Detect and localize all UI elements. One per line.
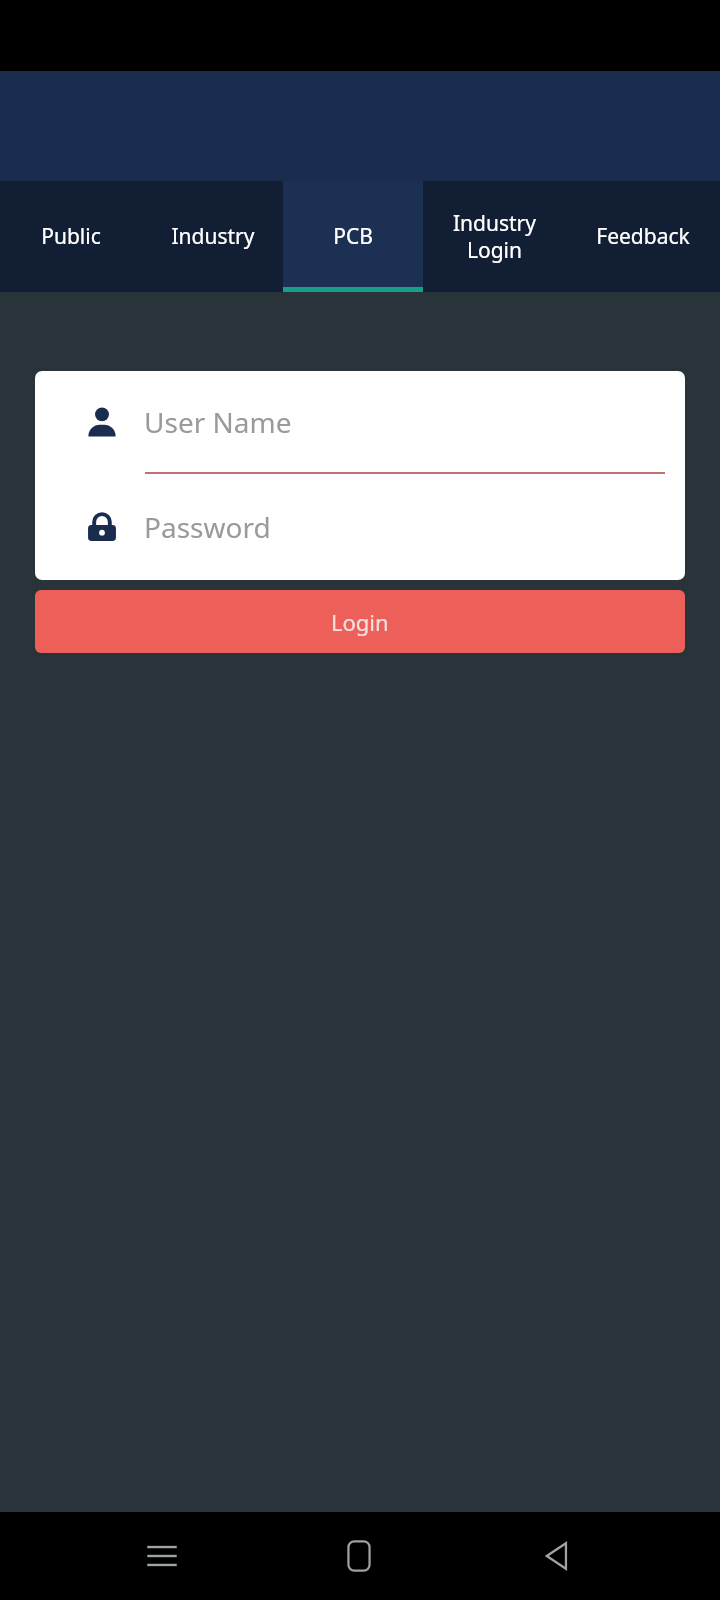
button[interactable]: Login: [35, 590, 685, 653]
staticText: Industry: [171, 222, 255, 251]
button[interactable]: Recents: [127, 1521, 197, 1591]
staticText: Password: [144, 508, 271, 546]
staticText: Login: [331, 607, 389, 637]
staticText: User Name: [144, 403, 292, 441]
staticText: Industry Login: [429, 209, 560, 264]
button[interactable]: Industry Login: [423, 181, 566, 292]
other: User name: [85, 405, 119, 439]
staticText: PCB: [333, 222, 373, 251]
button[interactable]: Home: [324, 1521, 394, 1591]
button[interactable]: PCB: [283, 181, 423, 292]
other: Password: [85, 510, 119, 544]
button[interactable]: Public: [0, 181, 142, 292]
button[interactable]: Industry: [142, 181, 283, 292]
staticText: Feedback: [596, 222, 690, 251]
button[interactable]: Feedback: [566, 181, 720, 292]
button[interactable]: Back: [522, 1521, 592, 1591]
staticText: Public: [41, 222, 101, 251]
